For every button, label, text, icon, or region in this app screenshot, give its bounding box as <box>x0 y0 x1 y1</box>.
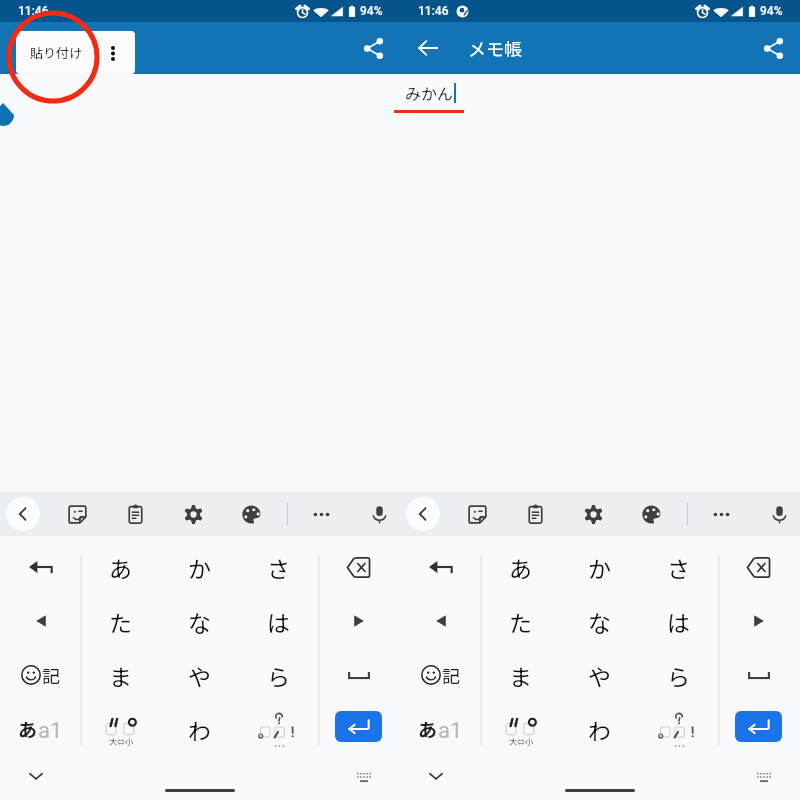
staticText: は <box>667 605 690 638</box>
button[interactable]: か <box>160 540 239 594</box>
button[interactable]: Back <box>6 497 40 531</box>
button[interactable]: Stickers <box>460 497 494 531</box>
button[interactable]: ら <box>239 648 318 702</box>
button[interactable]: Settings <box>576 497 610 531</box>
button[interactable] <box>318 702 399 756</box>
button[interactable]: た <box>481 594 560 648</box>
button[interactable]: More options <box>704 497 738 531</box>
staticText: 94% <box>760 4 783 18</box>
button[interactable] <box>718 540 799 594</box>
staticText: 11:46 <box>418 4 449 18</box>
button[interactable] <box>318 648 399 702</box>
button[interactable] <box>718 594 799 648</box>
staticText: や <box>588 659 611 692</box>
button[interactable]: 記 <box>400 648 481 702</box>
button[interactable]: は <box>239 594 318 648</box>
button[interactable]: あ <box>81 540 160 594</box>
staticText: な <box>588 605 611 638</box>
staticText: か <box>188 551 211 584</box>
staticText: 94% <box>360 4 383 18</box>
button[interactable]: 大⇔小 <box>481 702 560 756</box>
button[interactable] <box>239 702 318 756</box>
staticText: さ <box>267 551 290 584</box>
staticText: 11:46 <box>18 4 49 18</box>
staticText: は <box>267 605 290 638</box>
staticText: ら <box>267 659 290 692</box>
staticText: た <box>109 605 132 638</box>
button[interactable]: Hide keyboard <box>22 762 50 790</box>
staticText: わ <box>188 713 211 746</box>
button[interactable]: 記 <box>0 648 81 702</box>
button[interactable] <box>639 702 718 756</box>
button[interactable]: や <box>560 648 639 702</box>
button[interactable]: Share <box>755 30 791 66</box>
staticText: な <box>188 605 211 638</box>
button[interactable]: Themes <box>234 497 268 531</box>
button[interactable]: さ <box>239 540 318 594</box>
button[interactable]: ま <box>81 648 160 702</box>
staticText: ま <box>109 659 132 692</box>
button[interactable] <box>718 702 799 756</box>
button[interactable]: わ <box>160 702 239 756</box>
staticText: みかん <box>405 81 454 104</box>
button[interactable]: 貼り付け <box>16 31 135 74</box>
button[interactable]: あ <box>400 702 481 756</box>
staticText: 大⇔小 <box>509 736 533 748</box>
button[interactable]: さ <box>639 540 718 594</box>
button[interactable]: Back <box>412 32 444 64</box>
button[interactable] <box>318 540 399 594</box>
button[interactable]: More options <box>304 497 338 531</box>
button[interactable]: Share <box>355 30 391 66</box>
button[interactable]: ら <box>639 648 718 702</box>
staticText: あ <box>509 551 532 584</box>
button[interactable]: Clipboard <box>118 497 152 531</box>
staticText: わ <box>588 713 611 746</box>
staticText: 記 <box>442 662 460 688</box>
button[interactable]: は <box>639 594 718 648</box>
button[interactable]: な <box>560 594 639 648</box>
button[interactable]: More options <box>104 44 122 62</box>
button[interactable]: Themes <box>634 497 668 531</box>
staticText: ら <box>667 659 690 692</box>
button[interactable]: 大⇔小 <box>81 702 160 756</box>
button[interactable] <box>400 540 481 594</box>
button[interactable]: Voice input <box>762 497 796 531</box>
staticText: a1 <box>438 718 463 744</box>
staticText: 大⇔小 <box>109 736 133 748</box>
button[interactable] <box>0 540 81 594</box>
staticText: あ <box>109 551 132 584</box>
staticText: あ <box>18 715 38 743</box>
button[interactable] <box>318 594 399 648</box>
button[interactable]: ま <box>481 648 560 702</box>
button[interactable] <box>718 648 799 702</box>
staticText: 貼り付け <box>30 43 83 62</box>
button[interactable]: Hide keyboard <box>422 762 450 790</box>
button[interactable]: た <box>81 594 160 648</box>
button[interactable]: わ <box>560 702 639 756</box>
staticText: あ <box>418 715 438 743</box>
staticText: ま <box>509 659 532 692</box>
button[interactable] <box>0 594 81 648</box>
button[interactable]: か <box>560 540 639 594</box>
staticText: 記 <box>42 662 60 688</box>
staticText: か <box>588 551 611 584</box>
button[interactable]: あ <box>0 702 81 756</box>
staticText: さ <box>667 551 690 584</box>
button[interactable]: な <box>160 594 239 648</box>
staticText: a1 <box>38 718 63 744</box>
button[interactable]: Settings <box>176 497 210 531</box>
staticText: メモ帳 <box>468 35 522 61</box>
button[interactable]: Back <box>406 497 440 531</box>
staticText: や <box>188 659 211 692</box>
button[interactable]: Keyboard layout <box>750 762 778 790</box>
staticText: た <box>509 605 532 638</box>
button[interactable]: Voice input <box>362 497 396 531</box>
button[interactable]: Stickers <box>60 497 94 531</box>
button[interactable]: あ <box>481 540 560 594</box>
button[interactable]: Keyboard layout <box>350 762 378 790</box>
button[interactable]: や <box>160 648 239 702</box>
button[interactable]: Clipboard <box>518 497 552 531</box>
button[interactable] <box>400 594 481 648</box>
